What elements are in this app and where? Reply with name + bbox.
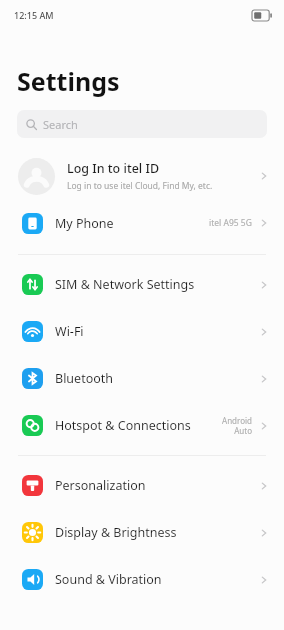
button[interactable]: Wi-Fi — [0, 308, 284, 355]
button[interactable]: Personalization — [0, 462, 284, 509]
staticText: Bluetooth — [55, 370, 258, 387]
staticText: Log In to itel ID — [67, 160, 160, 177]
staticText: 12:15 AM — [14, 9, 54, 21]
other: Bluetooth — [22, 368, 43, 389]
staticText: Display & Brightness — [55, 524, 258, 541]
staticText: Settings — [17, 64, 120, 98]
staticText: My Phone — [55, 215, 209, 232]
button[interactable]: Sound & Vibration — [0, 556, 284, 603]
button[interactable]: Bluetooth — [0, 355, 284, 402]
staticText: Personalization — [55, 477, 258, 494]
button[interactable]: Log In to itel ID — [0, 150, 284, 202]
staticText: Hotspot & Connections — [55, 417, 222, 434]
button[interactable]: Hotspot & Connections — [0, 402, 284, 449]
other: Personalization — [22, 475, 43, 496]
button[interactable]: Search — [17, 110, 267, 138]
other: My Phone — [22, 213, 43, 234]
other: Display & Brightness — [22, 522, 43, 543]
other: Wi-Fi — [22, 321, 43, 342]
staticText: SIM & Network Settings — [55, 276, 258, 293]
staticText: Search — [43, 117, 78, 132]
staticText: Log in to use itel Cloud, Find My, etc. — [67, 180, 213, 192]
button[interactable]: SIM & Network Settings — [0, 261, 284, 308]
staticText: Sound & Vibration — [55, 571, 258, 588]
other: Hotspot & Connections — [22, 415, 43, 436]
staticText: Wi-Fi — [55, 323, 258, 340]
staticText: Android Auto — [222, 415, 252, 436]
button[interactable]: Display & Brightness — [0, 509, 284, 556]
button[interactable]: My Phone — [0, 202, 284, 244]
staticText: itel A95 5G — [209, 217, 252, 229]
other: SIM & Network Settings — [22, 274, 43, 295]
other: Sound & Vibration — [22, 569, 43, 590]
